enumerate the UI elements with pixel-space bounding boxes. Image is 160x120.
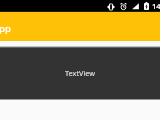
- staticText: pp: [0, 22, 11, 35]
- staticText: 14: [152, 1, 160, 11]
- other: Battery charging: [144, 2, 149, 10]
- staticText: TextView: [65, 68, 95, 78]
- button[interactable]: pp: [0, 12, 160, 41]
- button[interactable]: TextView: [0, 48, 160, 100]
- other: Ringer set to vibrate: [107, 3, 115, 11]
- other: Mobile signal full: [132, 3, 139, 10]
- other: Alarm set: [120, 3, 127, 10]
